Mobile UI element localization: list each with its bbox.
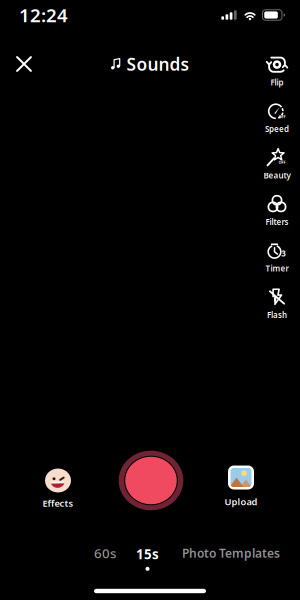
button[interactable]: Close — [5, 45, 43, 83]
staticText: Timer — [265, 263, 288, 274]
button[interactable]: OFF — [256, 147, 298, 181]
staticText: 12:24 — [19, 3, 68, 27]
staticText: OFF — [278, 159, 285, 165]
button[interactable]: Flip — [256, 54, 298, 88]
button[interactable]: Effects — [26, 467, 90, 515]
staticText: 15s — [136, 545, 159, 563]
button[interactable]: 60s — [87, 538, 123, 568]
button[interactable]: OFF — [256, 101, 298, 135]
staticText: Flip — [270, 77, 283, 88]
staticText: 3 — [281, 248, 286, 259]
button[interactable]: Record — [118, 447, 184, 513]
staticText: Upload — [224, 495, 257, 508]
staticText: Beauty — [263, 170, 290, 181]
button[interactable]: Upload — [209, 465, 273, 513]
staticText: Sounds — [126, 52, 189, 75]
button[interactable]: Filters — [256, 194, 298, 228]
button[interactable]: 3 — [256, 240, 298, 274]
button[interactable]: Sounds — [100, 45, 199, 82]
staticText: Speed — [265, 124, 289, 134]
staticText: OFF — [279, 114, 286, 119]
staticText: 60s — [94, 544, 116, 562]
staticText: Photo Templates — [182, 545, 280, 561]
button[interactable]: Photo Templates — [175, 539, 287, 567]
staticText: Flash — [267, 310, 287, 320]
staticText: Effects — [42, 497, 73, 509]
staticText: Filters — [265, 217, 288, 227]
button[interactable]: 15s — [129, 539, 166, 573]
button[interactable]: Flash — [256, 287, 298, 321]
